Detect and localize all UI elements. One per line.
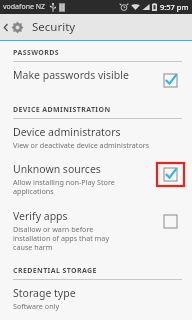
button[interactable]: Device administrators: [0, 119, 192, 156]
staticText: CREDENTIAL STORAGE: [13, 266, 97, 276]
button[interactable]: Navigate up: [0, 17, 26, 38]
staticText: vodafone NZ: [3, 2, 46, 12]
staticText: Software only: [13, 301, 60, 311]
staticText: Allow installing non-Play Store applicat…: [13, 177, 115, 197]
button[interactable]: Storage type: [0, 280, 192, 317]
button[interactable]: Unchecked: [164, 215, 177, 228]
button[interactable]: Checked: [164, 74, 177, 87]
button[interactable]: Make passwords visible: [0, 62, 192, 98]
staticText: DEVICE ADMINISTRATION: [13, 105, 111, 115]
staticText: View or deactivate device administrators: [13, 140, 150, 150]
staticText: PASSWORDS: [13, 48, 59, 58]
staticText: Security: [32, 19, 76, 35]
button[interactable]: Unknown sources: [0, 156, 192, 203]
button[interactable]: Checked: [164, 168, 177, 181]
staticText: 9:57 pm: [160, 2, 189, 12]
button[interactable]: Verify apps: [0, 203, 192, 259]
staticText: Device administrators: [13, 125, 121, 139]
staticText: Storage type: [13, 286, 76, 300]
staticText: Disallow or warn before installation of …: [13, 224, 110, 253]
staticText: Verify apps: [13, 209, 68, 223]
staticText: Make passwords visible: [13, 68, 129, 82]
staticText: Unknown sources: [13, 162, 101, 176]
